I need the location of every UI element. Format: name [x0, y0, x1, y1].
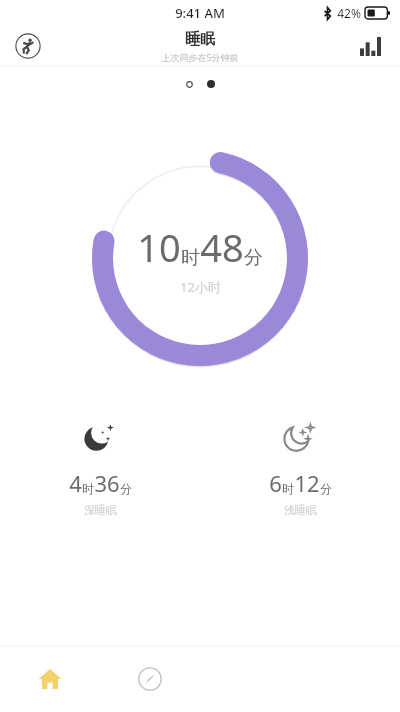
staticText: 浅睡眠 — [284, 503, 317, 517]
staticText: 时 — [282, 481, 294, 496]
staticText: 4 — [69, 468, 82, 498]
staticText: 分 — [320, 481, 332, 496]
staticText: 时 — [82, 481, 94, 496]
staticText: 上次同步在5分钟前 — [161, 51, 239, 63]
button[interactable]: Discover — [100, 646, 200, 712]
staticText: 9:41 AM — [175, 4, 225, 22]
button[interactable]: Statistics — [353, 29, 387, 63]
staticText: 36 — [94, 468, 120, 498]
button[interactable]: Activity — [10, 28, 46, 64]
staticText: 分 — [120, 481, 132, 496]
staticText: 10 — [137, 221, 181, 273]
button[interactable]: Home — [0, 646, 100, 712]
staticText: 12小时 — [180, 278, 221, 296]
button[interactable]: 4 — [0, 412, 200, 521]
staticText: 时 — [181, 246, 200, 270]
staticText: 12 — [294, 468, 320, 498]
staticText: 睡眠 — [185, 30, 215, 49]
staticText: 6 — [269, 468, 282, 498]
staticText: 深睡眠 — [84, 503, 117, 517]
staticText: 48 — [200, 221, 244, 273]
staticText: 42% — [337, 5, 361, 21]
staticText: 分 — [244, 246, 263, 270]
button[interactable]: 6 — [200, 412, 400, 521]
